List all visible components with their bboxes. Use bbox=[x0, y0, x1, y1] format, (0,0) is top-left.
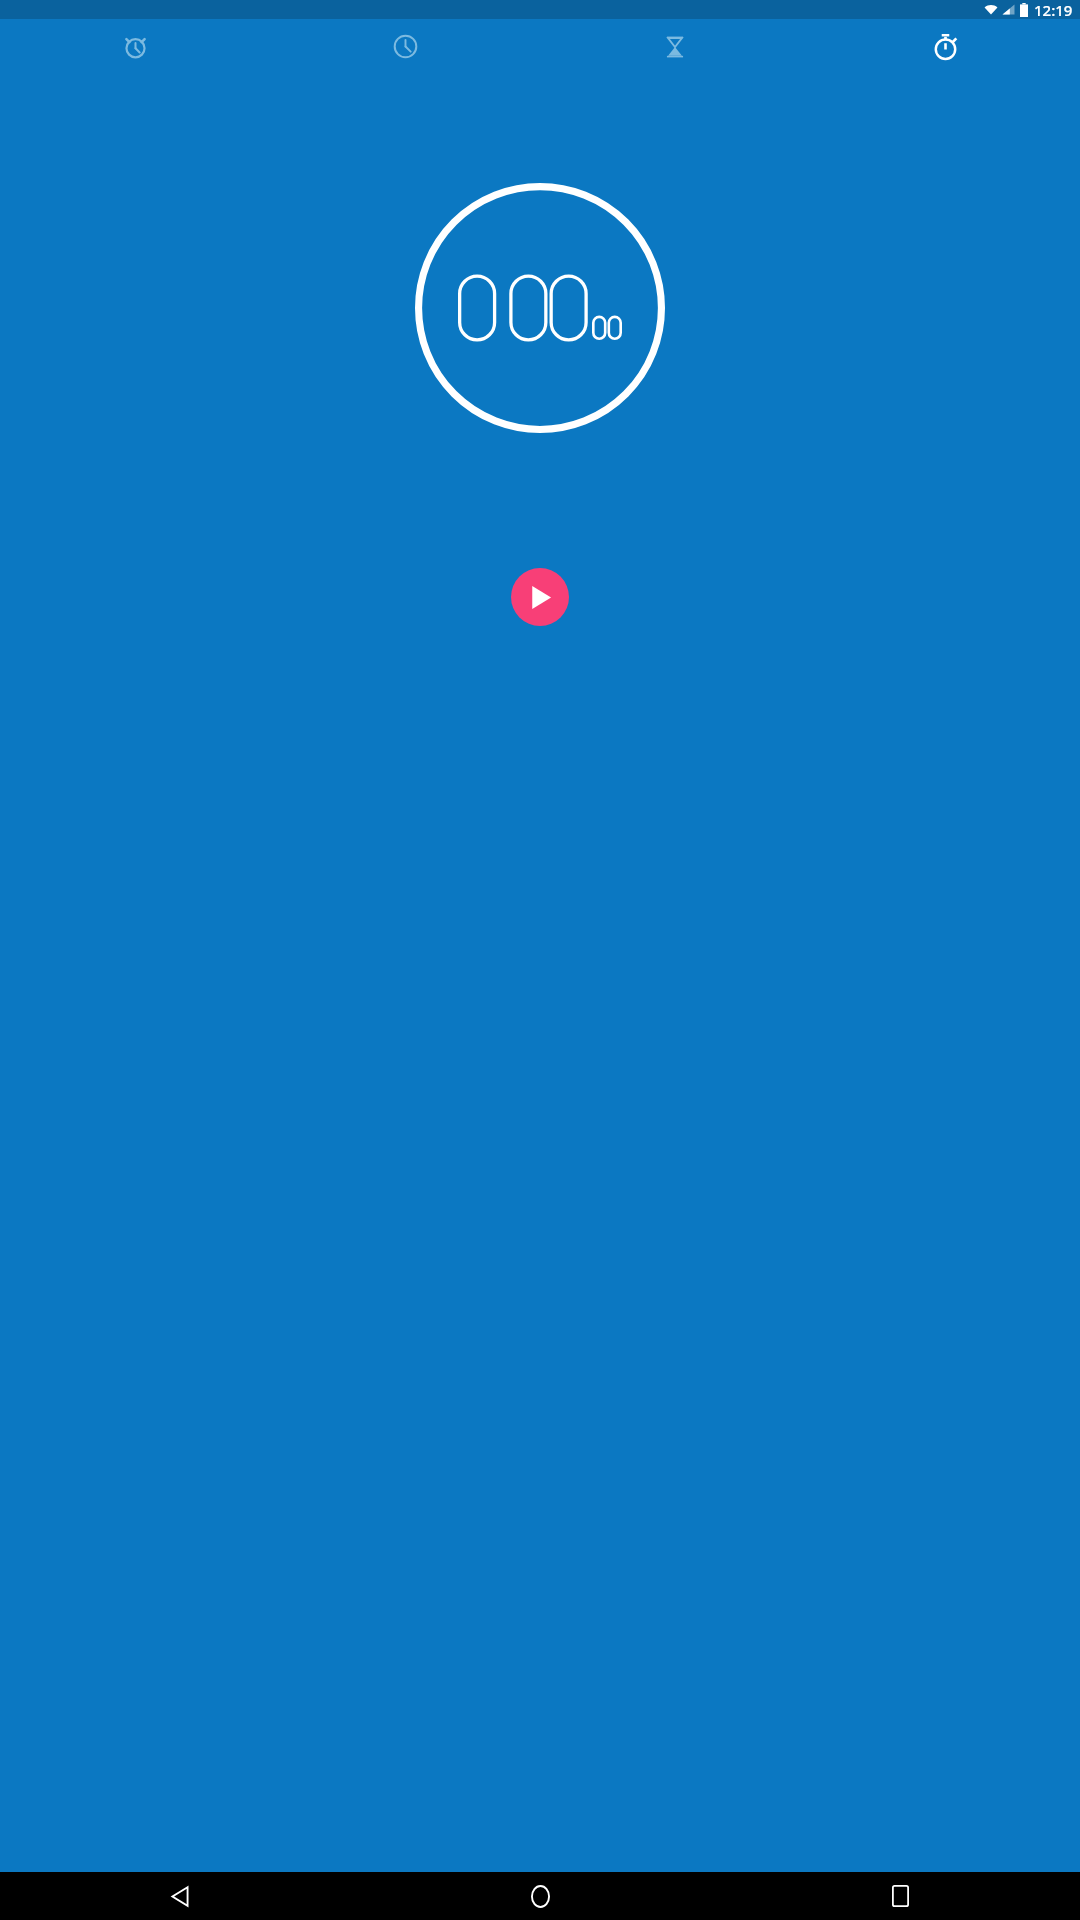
button[interactable]: Home bbox=[360, 1872, 720, 1920]
button[interactable]: Alarm bbox=[0, 19, 270, 74]
button[interactable]: Start bbox=[511, 568, 569, 626]
button[interactable]: Back bbox=[0, 1872, 360, 1920]
button[interactable]: Recents bbox=[720, 1872, 1080, 1920]
button[interactable]: Stopwatch bbox=[810, 19, 1080, 74]
button[interactable]: Clock bbox=[270, 19, 540, 74]
button[interactable]: Timer bbox=[540, 19, 810, 74]
staticText: 12:19 bbox=[1034, 0, 1073, 19]
